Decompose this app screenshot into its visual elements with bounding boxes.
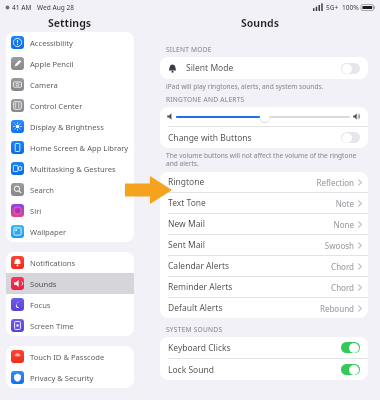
button[interactable]: Focus	[6, 294, 134, 315]
staticText: Privacy & Security	[30, 373, 94, 383]
staticText: 100%	[342, 3, 359, 12]
staticText: SYSTEM SOUNDS	[166, 325, 223, 334]
staticText: SILENT MODE	[166, 45, 212, 54]
button[interactable]: Reminder Alerts	[160, 277, 368, 297]
staticText: Ringtone	[168, 176, 205, 188]
staticText: Rebound	[319, 303, 354, 314]
staticText: Touch ID & Passcode	[30, 352, 105, 362]
staticText: Accessibility	[30, 38, 73, 48]
staticText: Silent Mode	[186, 62, 234, 74]
staticText: Note	[335, 198, 354, 209]
button[interactable]: Screen Time	[6, 315, 134, 336]
staticText: Reminder Alerts	[168, 281, 233, 293]
button[interactable]: New Mail	[160, 214, 368, 234]
staticText: None	[333, 219, 354, 230]
staticText: Chord	[331, 282, 354, 293]
button[interactable]: Touch ID & Passcode	[6, 346, 134, 367]
button[interactable]: Accessibility	[6, 32, 134, 53]
staticText: Chord	[331, 261, 354, 272]
button[interactable]: Toggle on	[341, 364, 360, 375]
staticText: 5G+	[326, 3, 339, 12]
button[interactable]: Camera	[6, 74, 134, 95]
staticText: iPad will play ringtones, alerts, and sy…	[166, 82, 324, 91]
staticText: Wallpaper	[30, 227, 67, 237]
button[interactable]: Apple Pencil	[6, 53, 134, 74]
staticText: Control Center	[30, 101, 83, 111]
staticText: 41 AM	[12, 3, 32, 12]
staticText: The volume buttons will not affect the v…	[166, 151, 357, 168]
button[interactable]: Lock Sound	[160, 359, 368, 380]
staticText: Multitasking & Gestures	[30, 164, 116, 174]
button[interactable]: Notifications	[6, 252, 134, 273]
staticText: Sounds	[30, 279, 57, 289]
button[interactable]: Control Center	[6, 95, 134, 116]
staticText: Home Screen & App Library	[30, 143, 129, 153]
button[interactable]: Privacy & Security	[6, 367, 134, 388]
staticText: Keyboard Clicks	[168, 342, 231, 354]
button[interactable]: Change with Buttons	[160, 127, 368, 148]
button[interactable]: Default Alerts	[160, 298, 368, 318]
button[interactable]: Sent Mail	[160, 235, 368, 255]
staticText: Wed Aug 28	[37, 3, 74, 12]
staticText: Default Alerts	[168, 302, 223, 314]
staticText: New Mail	[168, 218, 205, 230]
staticText: Display & Brightness	[30, 122, 104, 132]
button[interactable]: Toggle off	[341, 132, 360, 143]
button[interactable]: Display & Brightness	[6, 116, 134, 137]
button[interactable]: Multitasking & Gestures	[6, 158, 134, 179]
staticText: Swoosh	[324, 240, 354, 251]
staticText: Calendar Alerts	[168, 260, 230, 272]
staticText: Focus	[30, 300, 51, 310]
button[interactable]: Wallpaper	[6, 221, 134, 242]
staticText: Siri	[30, 206, 42, 216]
staticText: Apple Pencil	[30, 59, 74, 69]
button[interactable]: Toggle off	[341, 63, 360, 74]
button[interactable]: Sounds	[6, 273, 134, 294]
staticText: Settings	[48, 16, 92, 30]
button[interactable]: Keyboard Clicks	[160, 337, 368, 358]
button[interactable]: Calendar Alerts	[160, 256, 368, 276]
staticText: Change with Buttons	[168, 132, 252, 144]
staticText: Camera	[30, 80, 58, 90]
staticText: RINGTONE AND ALERTS	[166, 95, 245, 104]
staticText: Screen Time	[30, 321, 74, 331]
button[interactable]: Home Screen & App Library	[6, 137, 134, 158]
staticText: Search	[30, 185, 55, 195]
staticText: Text Tone	[168, 197, 206, 209]
button[interactable]: Toggle on	[341, 342, 360, 353]
button[interactable]: Text Tone	[160, 193, 368, 213]
staticText: Sounds	[241, 16, 279, 30]
button[interactable]: Siri	[6, 200, 134, 221]
button[interactable]: Ringtone	[160, 172, 368, 192]
staticText: Lock Sound	[168, 364, 214, 376]
other: Silent mode bell	[168, 64, 177, 73]
staticText: Sent Mail	[168, 239, 205, 251]
button[interactable]: Search	[6, 179, 134, 200]
staticText: Reflection	[316, 177, 354, 188]
staticText: Notifications	[30, 258, 76, 268]
button[interactable]: Silent mode bell	[160, 57, 368, 79]
